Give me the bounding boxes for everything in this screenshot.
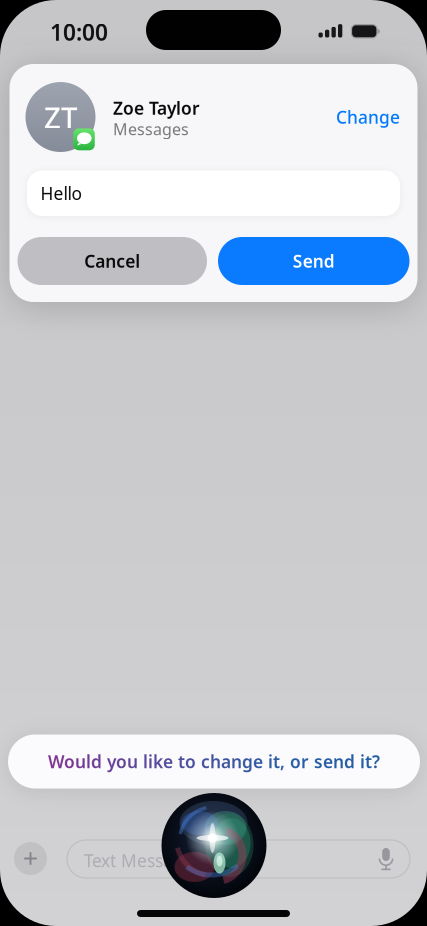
staticText: Change	[336, 105, 400, 128]
staticText: Zoe Taylor	[113, 96, 200, 119]
staticText: Hello	[40, 182, 81, 205]
staticText: Text Message	[84, 849, 194, 872]
button[interactable]	[8, 734, 420, 788]
staticText: Send	[293, 249, 335, 272]
button[interactable]: Send	[218, 237, 409, 285]
staticText: 10:00	[50, 17, 108, 47]
button[interactable]: Siri	[161, 793, 266, 898]
button[interactable]: Cancel	[17, 237, 207, 285]
staticText: Cancel	[84, 249, 140, 272]
staticText: Messages	[113, 118, 189, 140]
button[interactable]: Add attachment	[14, 842, 47, 875]
button[interactable]: Dictate	[377, 848, 395, 871]
button[interactable]: Change	[300, 105, 400, 129]
staticText: ZT	[44, 97, 77, 136]
button[interactable]: Hello	[27, 170, 400, 216]
